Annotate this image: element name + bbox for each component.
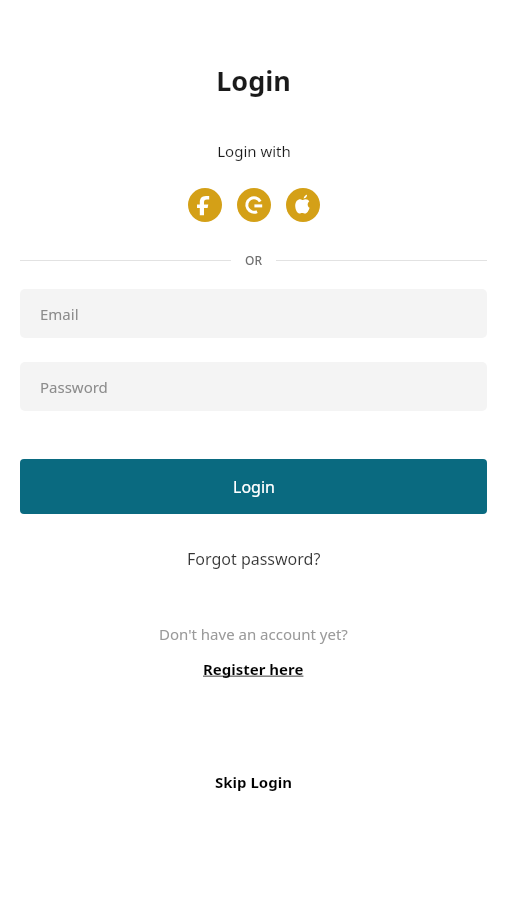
staticText: Login: [233, 476, 275, 498]
button[interactable]: Login: [20, 459, 487, 514]
button[interactable]: Login with Facebook: [188, 188, 222, 222]
button[interactable]: Register here: [193, 656, 314, 682]
button[interactable]: Login with Google: [237, 188, 271, 222]
button[interactable]: Password: [20, 362, 487, 411]
button[interactable]: Email: [20, 289, 487, 338]
staticText: Login: [216, 62, 291, 99]
staticText: Skip Login: [215, 772, 292, 792]
staticText: Forgot password?: [187, 548, 321, 570]
button[interactable]: Login with Apple: [286, 188, 320, 222]
staticText: Password: [40, 377, 108, 397]
staticText: Don't have an account yet?: [159, 624, 348, 644]
staticText: OR: [245, 252, 262, 268]
staticText: Register here: [203, 659, 304, 679]
staticText: Email: [40, 304, 79, 324]
button[interactable]: Forgot password?: [175, 542, 333, 576]
staticText: Login with: [217, 141, 291, 161]
button[interactable]: Skip Login: [203, 766, 304, 798]
